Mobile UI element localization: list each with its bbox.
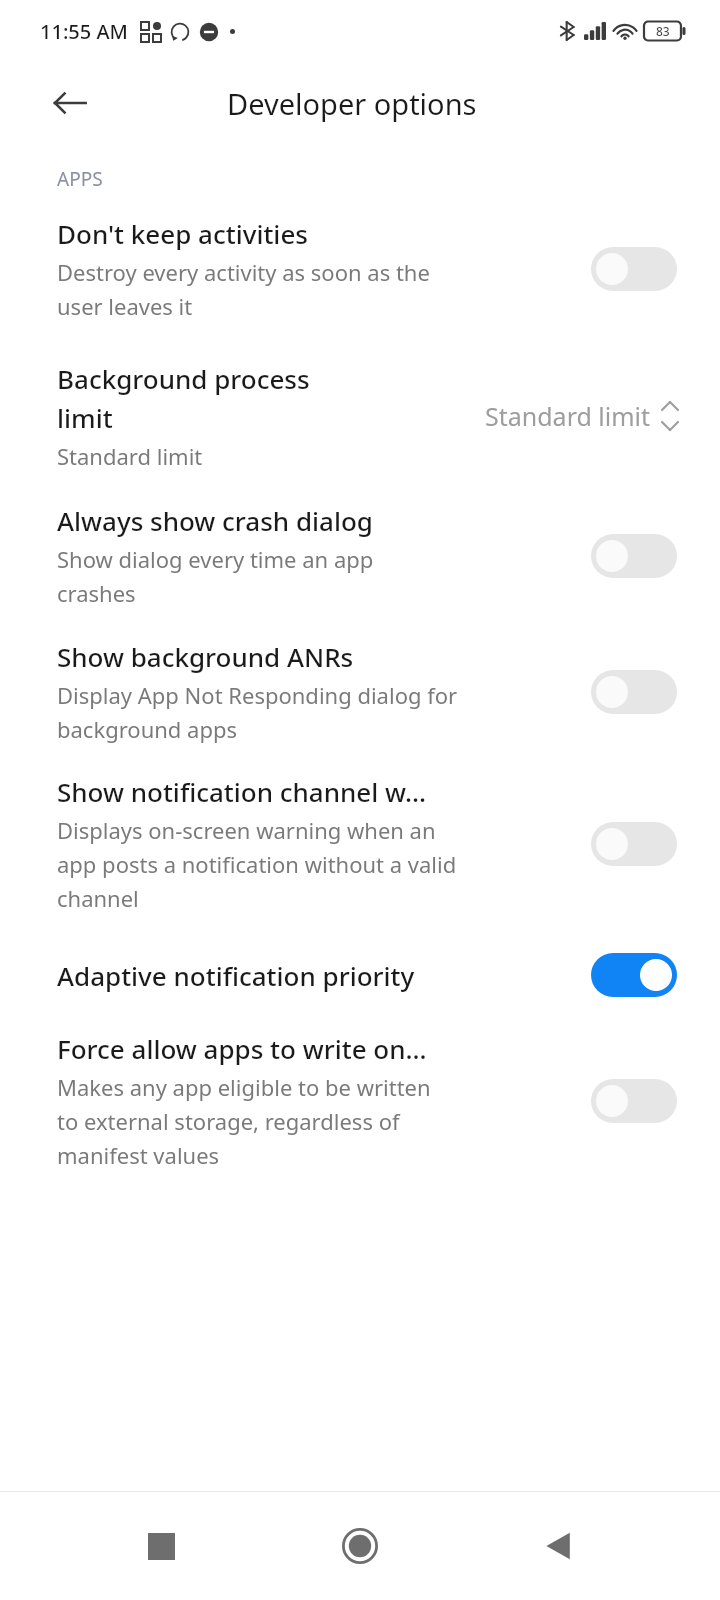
button[interactable]: Show notification channel w… (0, 744, 720, 913)
staticText: Makes any app eligible to be written to … (57, 1072, 431, 1170)
button[interactable]: Toggle off (588, 818, 680, 870)
button[interactable]: Show background ANRs (0, 608, 720, 744)
button[interactable]: Always show crash dialog (0, 471, 720, 608)
staticText: Always show crash dialog (57, 503, 373, 538)
button[interactable]: Toggle on (588, 949, 680, 1001)
button[interactable]: Home (322, 1508, 398, 1584)
button[interactable]: Back (521, 1508, 597, 1584)
button[interactable]: Toggle off (588, 530, 680, 582)
staticText: Background process limit (57, 361, 310, 435)
button[interactable]: Back (42, 75, 98, 131)
staticText: Force allow apps to write on… (57, 1031, 427, 1066)
button[interactable]: Toggle off (588, 666, 680, 718)
staticText: Show notification channel w… (57, 774, 426, 809)
button[interactable]: Background process limit (0, 321, 720, 471)
staticText: Displays on-screen warning when an app p… (57, 815, 457, 913)
staticText: APPS (57, 166, 103, 192)
staticText: Adaptive notification priority (57, 958, 415, 993)
staticText: Don't keep activities (57, 216, 308, 251)
button[interactable]: Don't keep activities (0, 192, 720, 321)
staticText: Standard limit (485, 399, 651, 433)
staticText: Developer options (227, 84, 477, 123)
staticText: Standard limit (57, 441, 203, 471)
button[interactable]: Toggle off (588, 243, 680, 295)
button[interactable]: Adaptive notification priority (0, 913, 720, 1001)
staticText: Display App Not Responding dialog for ba… (57, 680, 458, 744)
staticText: Show background ANRs (57, 639, 354, 674)
staticText: Destroy every activity as soon as the us… (57, 257, 430, 321)
button[interactable]: Force allow apps to write on… (0, 1001, 720, 1170)
staticText: Show dialog every time an app crashes (57, 544, 374, 608)
button[interactable]: Toggle off (588, 1075, 680, 1127)
staticText: 83 (656, 23, 670, 39)
staticText: 11:55 AM (40, 18, 128, 45)
button[interactable]: Recents (123, 1508, 199, 1584)
